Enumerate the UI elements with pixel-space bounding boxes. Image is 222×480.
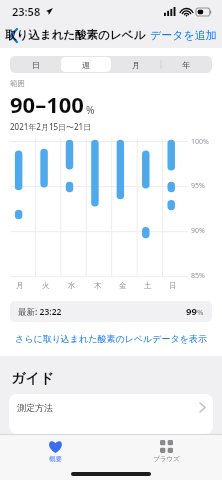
staticText: % [197,307,204,317]
staticText: 年 [182,60,190,70]
button[interactable]: データを追加 [150,28,217,42]
staticText: 95% [191,181,205,191]
staticText: さらに取り込まれた酸素のレベルデータを表示 [15,333,207,344]
staticText: 測定方法 [17,402,53,413]
button[interactable]: 月 [111,57,161,72]
staticText: 90% [191,226,205,236]
staticText: 月 [16,281,24,290]
staticText: 最新: 23:22 [18,306,62,318]
staticText: 取り込まれた酸素のレベル [5,28,146,42]
staticText: ブラウズ [153,455,180,463]
staticText: 概要 [49,455,62,463]
button[interactable]: ブラウズ [111,435,222,468]
staticText: 90–100 [10,89,84,119]
staticText: 月 [132,60,140,70]
staticText: 範囲 [10,79,25,88]
button[interactable]: 概要 [0,435,111,468]
staticText: 木 [94,281,102,290]
staticText: 100% [191,137,209,147]
staticText: 週 [82,60,90,70]
staticText: 土 [144,281,152,290]
staticText: 23:58 [12,4,41,19]
button[interactable]: 戻る [0,22,26,48]
staticText: 水 [68,281,76,290]
button[interactable]: 週 [61,57,111,72]
staticText: 99 [186,305,197,318]
button[interactable]: 日 [11,57,61,72]
staticText: 日 [169,281,177,290]
button[interactable]: さらに取り込まれた酸素のレベルデータを表示 [10,333,212,344]
staticText: データを追加 [150,28,217,42]
staticText: 85% [191,271,205,281]
button[interactable]: 年 [161,57,211,72]
button[interactable]: 最新: 23:22 [10,301,212,322]
button[interactable]: 測定方法 [9,394,213,420]
staticText: 日 [32,60,40,70]
staticText: 火 [42,281,50,290]
staticText: 金 [119,281,127,290]
staticText: ガイド [11,370,54,388]
staticText: 2021年2月15日〜21日 [10,121,92,132]
staticText: % [86,103,95,117]
